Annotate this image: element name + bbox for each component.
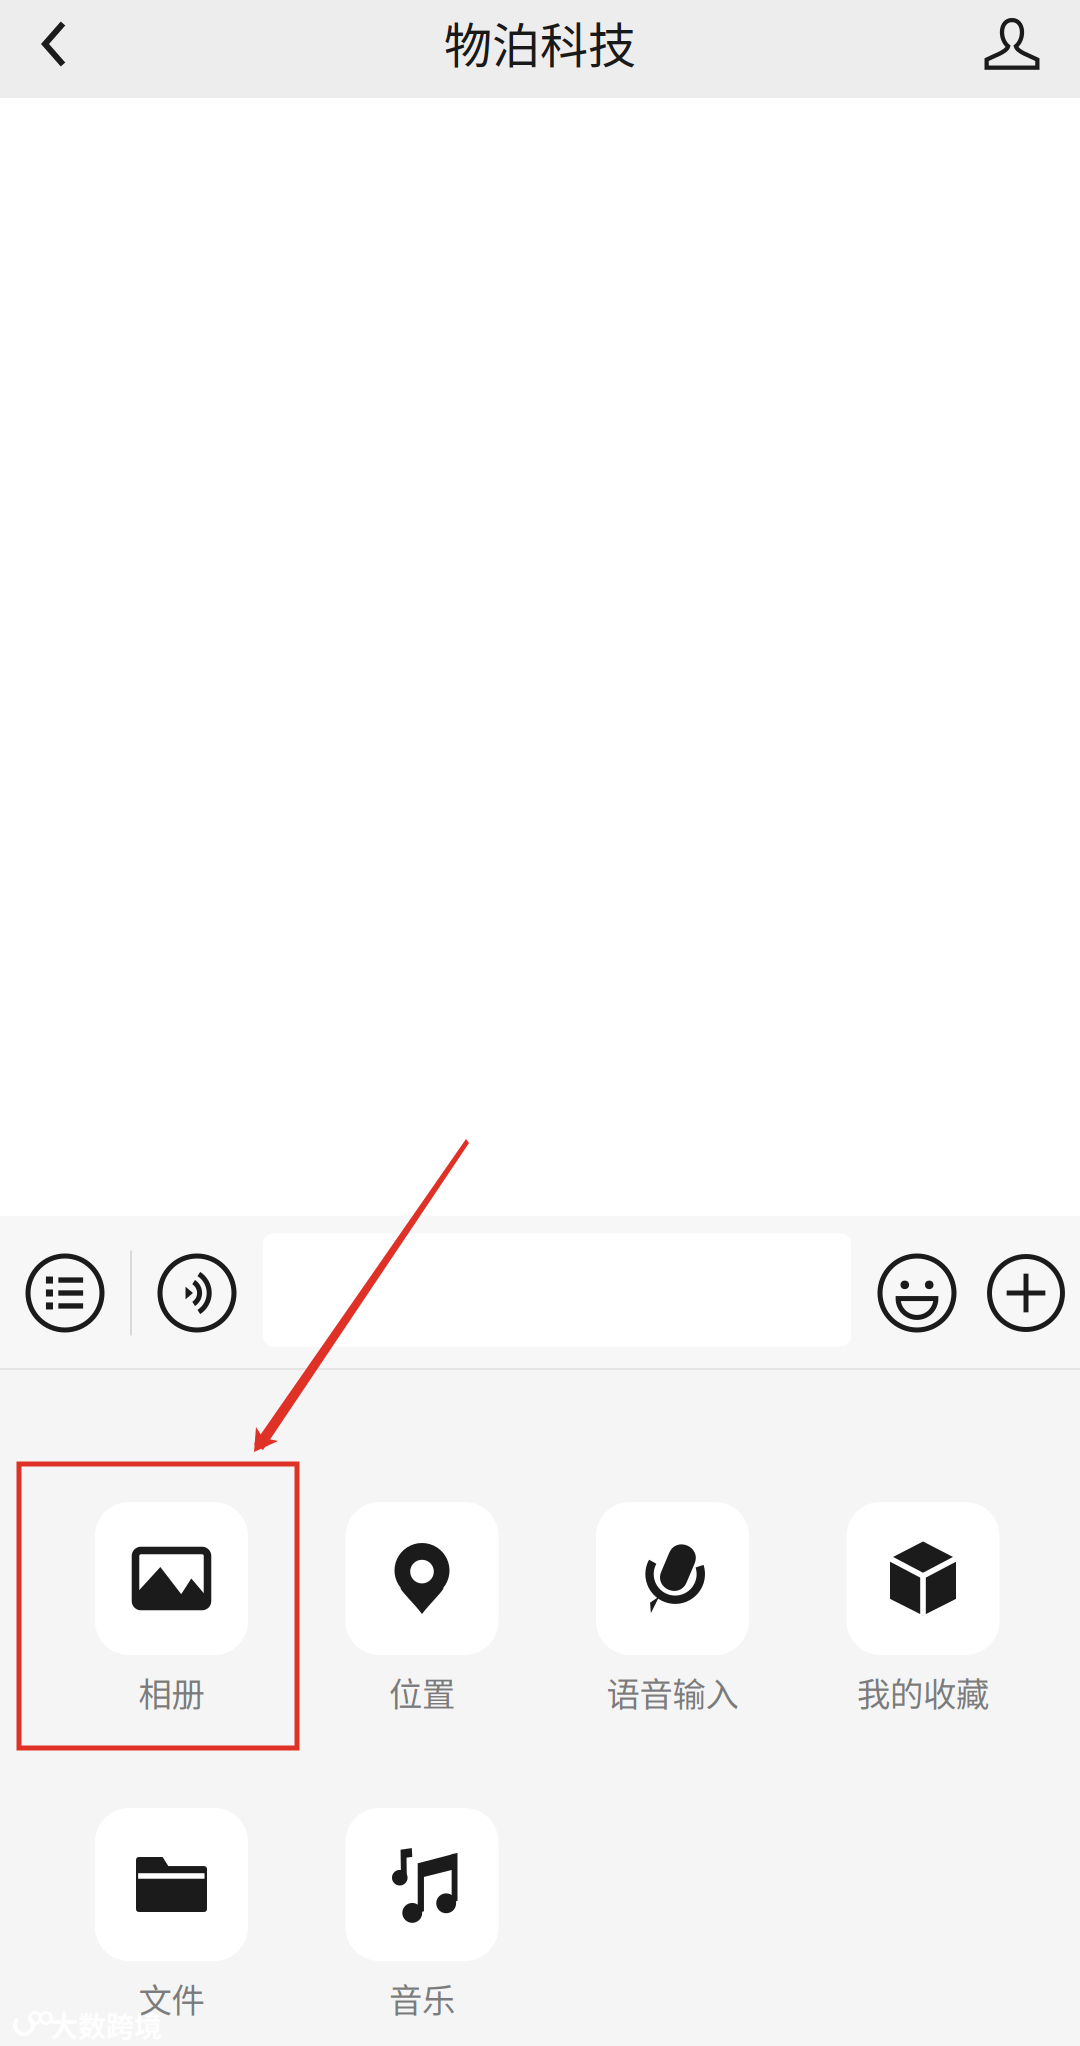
button[interactable]: Chat info bbox=[957, 5, 1067, 93]
staticText: 我的收藏 bbox=[857, 1668, 989, 1716]
button[interactable]: 语音输入 bbox=[596, 1502, 749, 1717]
button[interactable]: 相册 bbox=[95, 1502, 248, 1717]
button[interactable]: 文件 bbox=[95, 1808, 248, 2023]
button[interactable]: 音乐 bbox=[345, 1808, 498, 2023]
staticText: 位置 bbox=[389, 1668, 455, 1716]
staticText: 物泊科技 bbox=[444, 7, 636, 77]
staticText: 语音输入 bbox=[606, 1668, 738, 1716]
button[interactable]: Chat list bbox=[13, 1223, 117, 1363]
button[interactable]: 位置 bbox=[345, 1502, 498, 1717]
staticText: 相册 bbox=[138, 1668, 204, 1716]
staticText: 音乐 bbox=[389, 1974, 455, 2022]
button[interactable]: Back bbox=[0, 5, 108, 93]
button[interactable]: Emoji bbox=[865, 1223, 969, 1363]
button[interactable]: More bbox=[974, 1223, 1078, 1363]
button[interactable]: Voice message bbox=[145, 1223, 249, 1363]
staticText: 文件 bbox=[138, 1974, 204, 2022]
staticText: 大数跨境 bbox=[50, 2005, 162, 2045]
button[interactable]: 我的收藏 bbox=[846, 1502, 999, 1717]
button[interactable]: Message field bbox=[263, 1233, 851, 1346]
